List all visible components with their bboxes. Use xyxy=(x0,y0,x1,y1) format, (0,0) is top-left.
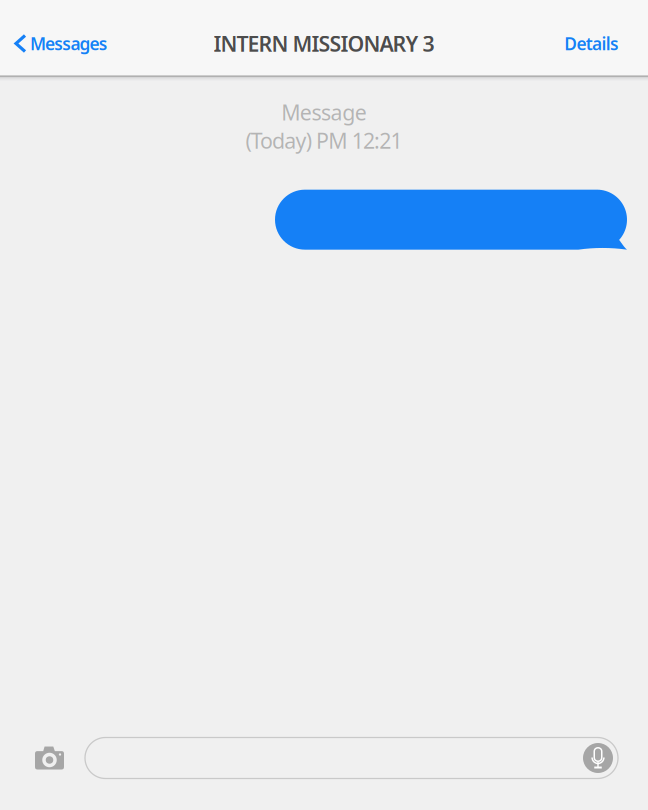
button[interactable] xyxy=(25,736,74,780)
staticText: INTERN MISSIONARY 3 xyxy=(213,29,434,58)
staticText: Messages xyxy=(30,32,108,55)
staticText: Message xyxy=(281,98,367,126)
button[interactable]: Details xyxy=(564,18,648,69)
button[interactable] xyxy=(85,737,618,778)
button[interactable] xyxy=(580,740,616,776)
button[interactable]: Messages xyxy=(0,18,108,69)
button[interactable] xyxy=(275,190,627,250)
staticText: (Today) PM 12:21 xyxy=(245,126,402,155)
staticText: Details xyxy=(564,32,619,55)
